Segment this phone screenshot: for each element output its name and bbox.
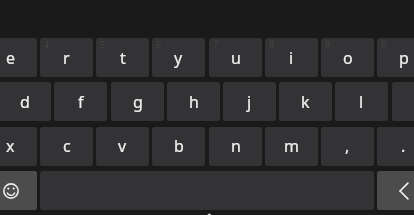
staticText: y bbox=[174, 47, 183, 69]
button[interactable]: g bbox=[111, 82, 164, 121]
staticText: p bbox=[399, 47, 409, 69]
button[interactable]: 4 bbox=[40, 38, 93, 77]
staticText: i bbox=[289, 47, 294, 69]
staticText: j bbox=[247, 91, 252, 113]
staticText: o bbox=[343, 47, 353, 69]
staticText: 5 bbox=[100, 38, 106, 50]
staticText: 8 bbox=[269, 38, 275, 50]
button[interactable]: b bbox=[152, 127, 205, 166]
button[interactable]: Emoji bbox=[0, 171, 37, 210]
staticText: c bbox=[63, 135, 71, 157]
button[interactable]: 0 bbox=[377, 38, 414, 77]
button[interactable]: 6 bbox=[152, 38, 205, 77]
button[interactable]: 8 bbox=[265, 38, 318, 77]
button[interactable]: m bbox=[265, 127, 318, 166]
button[interactable]: d bbox=[0, 82, 51, 121]
staticText: , bbox=[345, 135, 350, 157]
staticText: n bbox=[231, 135, 241, 157]
button[interactable]: 9 bbox=[321, 38, 374, 77]
button[interactable]: h bbox=[167, 82, 220, 121]
staticText: 4 bbox=[44, 38, 50, 50]
button[interactable]: x bbox=[0, 127, 37, 166]
staticText: 7 bbox=[213, 38, 219, 50]
staticText: m bbox=[284, 135, 299, 157]
button[interactable]: 5 bbox=[96, 38, 149, 77]
button[interactable]: l bbox=[335, 82, 388, 121]
button[interactable]: f bbox=[54, 82, 107, 121]
staticText: e bbox=[6, 47, 16, 69]
button[interactable]: 3 bbox=[0, 38, 37, 77]
staticText: . bbox=[401, 135, 406, 157]
staticText: g bbox=[133, 91, 143, 113]
staticText: f bbox=[78, 91, 84, 113]
button[interactable]: . bbox=[377, 127, 414, 166]
staticText: 0 bbox=[381, 38, 387, 50]
button[interactable]: , bbox=[321, 127, 374, 166]
staticText: t bbox=[120, 47, 126, 69]
button[interactable]: Enter bbox=[377, 171, 414, 210]
staticText: 6 bbox=[156, 38, 162, 50]
button[interactable]: 7 bbox=[209, 38, 262, 77]
button[interactable]: n bbox=[209, 127, 262, 166]
button[interactable]: j bbox=[223, 82, 276, 121]
staticText: d bbox=[20, 91, 30, 113]
staticText: u bbox=[231, 47, 241, 69]
staticText: k bbox=[301, 91, 310, 113]
staticText: b bbox=[174, 135, 184, 157]
button[interactable]: c bbox=[40, 127, 93, 166]
staticText: l bbox=[359, 91, 364, 113]
staticText: x bbox=[6, 135, 15, 157]
staticText: 9 bbox=[325, 38, 331, 50]
button[interactable]: v bbox=[96, 127, 149, 166]
staticText: r bbox=[63, 47, 70, 69]
staticText: h bbox=[189, 91, 199, 113]
button[interactable]: k bbox=[279, 82, 332, 121]
staticText: v bbox=[118, 135, 127, 157]
